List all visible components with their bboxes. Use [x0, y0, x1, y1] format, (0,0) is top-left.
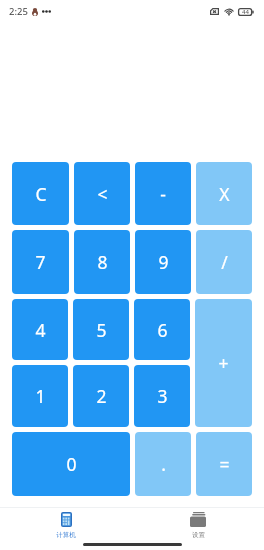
staticText: 设置	[192, 531, 205, 539]
staticText: 44	[242, 8, 249, 16]
staticText: 6	[157, 318, 168, 342]
staticText: 计算机	[56, 531, 76, 539]
staticText: 1	[35, 384, 46, 408]
button[interactable]: 8	[74, 230, 130, 294]
staticText: +	[218, 351, 229, 375]
staticText: 2	[96, 384, 107, 408]
button[interactable]: C	[12, 162, 69, 225]
staticText: <	[97, 182, 108, 206]
button[interactable]: 0	[12, 432, 130, 496]
button[interactable]: 3	[134, 365, 190, 427]
staticText: 3	[157, 384, 168, 408]
button[interactable]: =	[196, 432, 252, 496]
button[interactable]: 6	[134, 299, 190, 360]
button[interactable]: 计算机	[0, 507, 132, 550]
button[interactable]: <	[74, 162, 130, 225]
button[interactable]: 9	[135, 230, 191, 294]
button[interactable]: 5	[73, 299, 129, 360]
staticText: 2:25	[9, 5, 28, 18]
staticText: 7	[35, 250, 46, 274]
staticText: 0	[66, 452, 77, 476]
staticText: 4	[35, 318, 46, 342]
button[interactable]: /	[196, 230, 252, 294]
staticText: =	[219, 452, 230, 476]
button[interactable]: 7	[12, 230, 69, 294]
staticText: 9	[158, 250, 169, 274]
button[interactable]: +	[195, 299, 252, 427]
button[interactable]: -	[135, 162, 191, 225]
button[interactable]: .	[135, 432, 191, 496]
staticText: X	[219, 182, 230, 206]
staticText: 8	[97, 250, 108, 274]
button[interactable]: X	[196, 162, 252, 225]
button[interactable]: 1	[12, 365, 68, 427]
button[interactable]: 2	[73, 365, 129, 427]
staticText: -	[160, 182, 166, 206]
staticText: .	[161, 452, 166, 476]
button[interactable]: 4	[12, 299, 68, 360]
staticText: 5	[96, 318, 107, 342]
staticText: C	[35, 182, 47, 206]
button[interactable]: 设置	[132, 507, 264, 550]
staticText: /	[221, 250, 228, 274]
